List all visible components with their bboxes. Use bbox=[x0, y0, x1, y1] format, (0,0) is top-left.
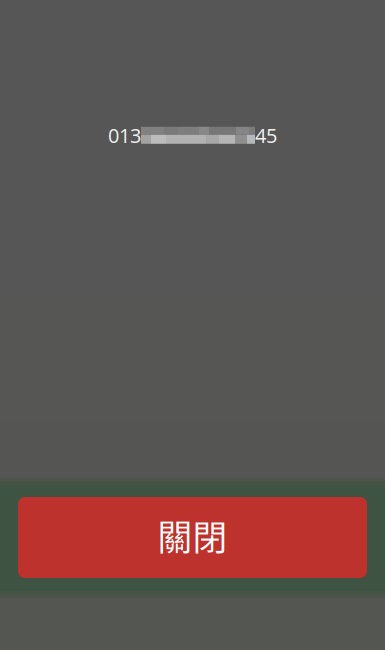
staticText: 45 bbox=[255, 122, 277, 149]
staticText: 關閉 bbox=[157, 510, 227, 561]
button[interactable]: 關閉 bbox=[18, 497, 367, 578]
staticText: 013 bbox=[108, 122, 141, 149]
